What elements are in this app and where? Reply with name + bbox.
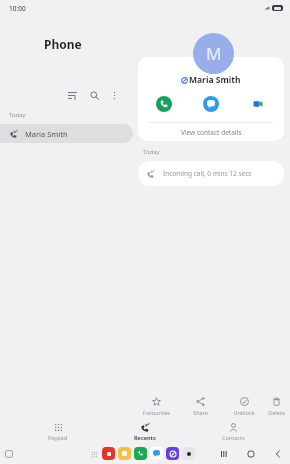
button[interactable]: Recent apps: [218, 448, 230, 460]
button[interactable]: Search: [85, 86, 103, 104]
staticText: Incoming call, 0 mins 12 secs: [163, 169, 252, 178]
button[interactable]: Incoming call, 0 mins 12 secs: [138, 161, 284, 186]
button[interactable]: View contact details: [138, 123, 284, 141]
button[interactable]: Sort: [63, 86, 81, 104]
button[interactable]: App: [102, 447, 115, 460]
staticText: Today: [9, 111, 26, 119]
staticText: Delete: [268, 409, 285, 416]
staticText: Favourites: [143, 409, 170, 416]
button[interactable]: Notifications: [5, 450, 13, 458]
button[interactable]: Back: [272, 448, 284, 460]
staticText: Contacts: [222, 434, 245, 441]
button[interactable]: Apps: [89, 449, 99, 459]
staticText: Phone: [44, 36, 82, 52]
button[interactable]: App: [166, 447, 179, 460]
staticText: Share: [193, 409, 208, 416]
staticText: M: [206, 42, 222, 65]
button[interactable]: Recents: [115, 421, 175, 443]
button[interactable]: App: [182, 447, 195, 460]
staticText: Recents: [134, 434, 156, 441]
button[interactable]: Message: [203, 96, 219, 112]
button[interactable]: More options: [105, 86, 123, 104]
button[interactable]: App: [134, 447, 147, 460]
button[interactable]: Maria Smith: [0, 124, 133, 143]
button[interactable]: App: [118, 447, 131, 460]
staticText: Maria Smith: [25, 129, 68, 139]
button[interactable]: Home: [245, 448, 257, 460]
button[interactable]: Call: [156, 96, 172, 112]
button[interactable]: Contacts: [203, 421, 263, 443]
button[interactable]: Keypad: [28, 421, 88, 443]
staticText: View contact details: [181, 128, 242, 137]
button[interactable]: App: [150, 447, 163, 460]
button[interactable]: Favourites: [134, 394, 178, 418]
staticText: Maria Smith: [189, 74, 241, 86]
staticText: Keypad: [48, 434, 68, 441]
button[interactable]: Delete: [266, 394, 286, 418]
staticText: Today: [143, 148, 160, 156]
button[interactable]: Unblock: [222, 394, 266, 418]
staticText: Unblock: [233, 409, 255, 416]
staticText: 10:00: [9, 4, 26, 13]
button[interactable]: Video call: [250, 96, 266, 112]
button[interactable]: Share: [178, 394, 222, 418]
